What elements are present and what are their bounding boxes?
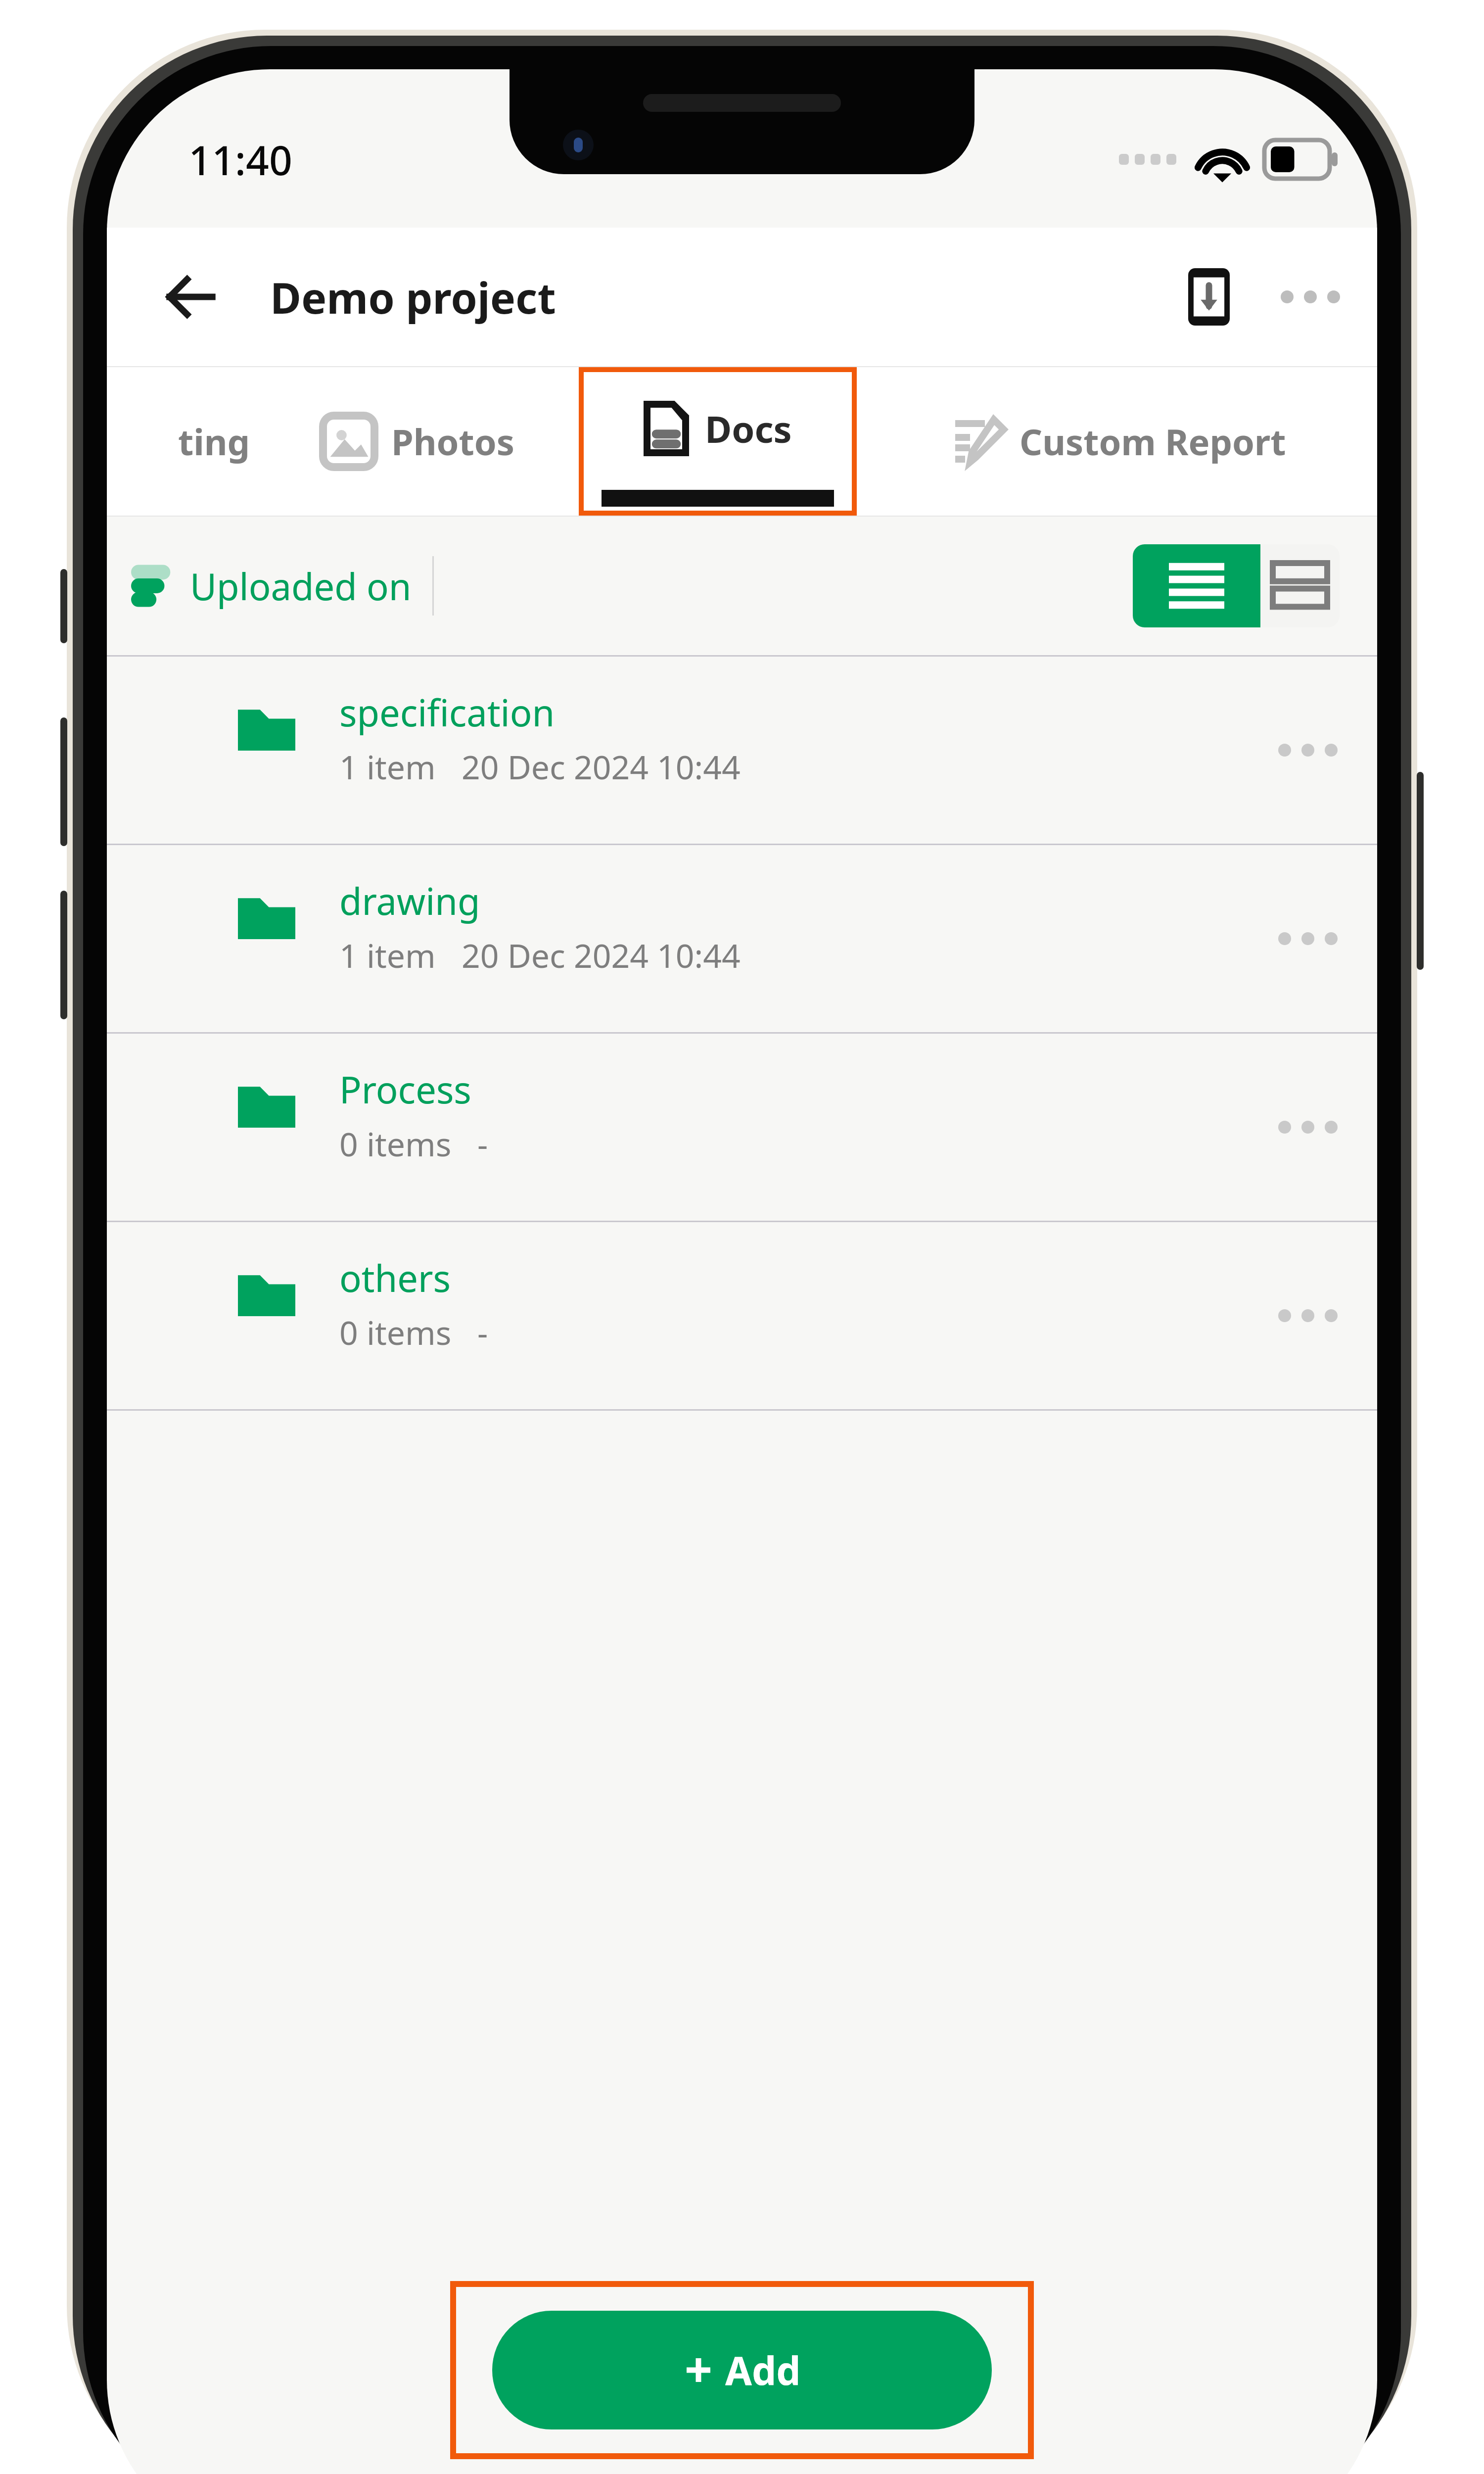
button[interactable]: Process — [107, 1034, 1377, 1221]
button[interactable]: More options — [1271, 257, 1350, 336]
staticText: 11:40 — [188, 132, 292, 187]
button[interactable]: Item options — [1266, 1274, 1350, 1358]
staticText: Photos — [391, 417, 514, 466]
staticText: drawing — [339, 876, 480, 926]
button[interactable]: List view — [1133, 544, 1260, 627]
staticText: Add — [725, 2344, 801, 2396]
staticText: Process — [339, 1064, 471, 1114]
staticText: Demo project — [270, 268, 556, 326]
button[interactable]: Item options — [1266, 708, 1350, 792]
button[interactable]: Docs — [584, 372, 852, 511]
staticText: 20 Dec 2024 10:44 — [462, 933, 741, 977]
staticText: 0 items — [339, 1310, 452, 1354]
button[interactable]: drawing — [107, 845, 1377, 1032]
staticText: 1 item — [339, 744, 436, 789]
button[interactable]: ting — [107, 367, 265, 516]
staticText: others — [339, 1253, 451, 1303]
staticText: 0 items — [339, 1121, 452, 1166]
staticText: Docs — [705, 404, 792, 454]
staticText: ting — [178, 417, 250, 466]
button[interactable]: Item options — [1266, 897, 1350, 981]
staticText: 20 Dec 2024 10:44 — [462, 744, 741, 789]
button[interactable]: Grid view — [1260, 544, 1340, 627]
button[interactable]: Uploaded on — [137, 556, 434, 616]
button[interactable]: Custom Report — [864, 367, 1377, 516]
button[interactable]: Add — [492, 2311, 992, 2429]
button[interactable]: others — [107, 1222, 1377, 1409]
button[interactable]: Back — [146, 252, 235, 341]
staticText: Custom Report — [1020, 417, 1286, 466]
staticText: 1 item — [339, 933, 436, 977]
staticText: Uploaded on — [190, 561, 412, 611]
button[interactable]: Download — [1167, 255, 1251, 339]
staticText: - — [477, 1121, 488, 1166]
button[interactable]: specification — [107, 657, 1377, 844]
staticText: specification — [339, 687, 555, 737]
staticText: - — [477, 1310, 488, 1354]
button[interactable]: Item options — [1266, 1085, 1350, 1169]
button[interactable]: Photos — [265, 367, 572, 516]
